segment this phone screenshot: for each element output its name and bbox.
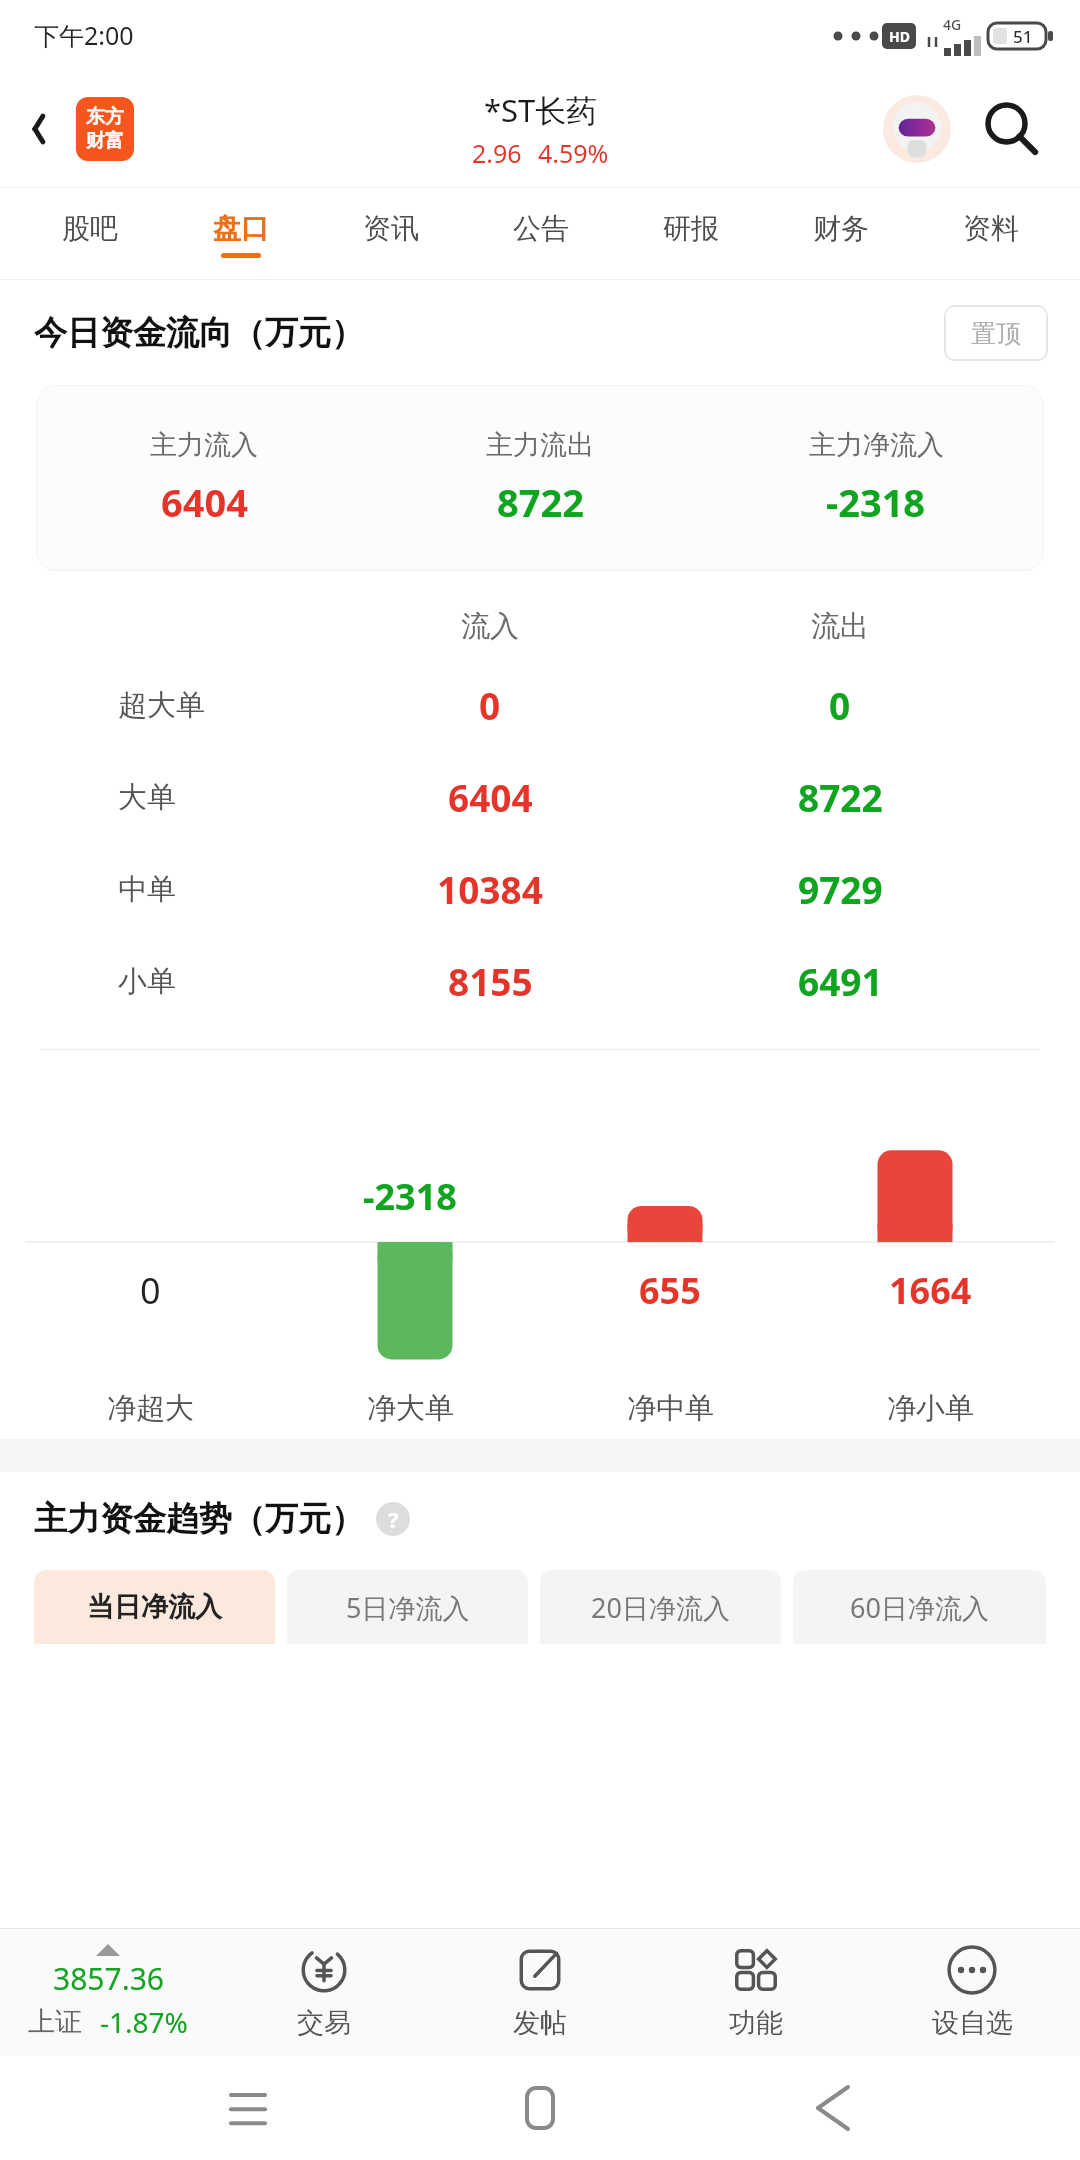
- staticText: 主力流入: [150, 428, 258, 462]
- button[interactable]: 3857.36: [0, 1928, 216, 2056]
- staticText: 净中单: [627, 1390, 714, 1427]
- staticText: ?: [388, 1504, 399, 1534]
- button[interactable]: 帮助: [376, 1502, 410, 1536]
- staticText: 研报: [663, 211, 719, 246]
- button[interactable]: 股吧: [14, 188, 165, 280]
- button[interactable]: 资料: [916, 188, 1066, 280]
- staticText: 当日净流入: [87, 1590, 222, 1624]
- staticText: 发帖: [513, 2006, 567, 2040]
- staticText: 3857.36: [53, 1958, 164, 1999]
- staticText: 主力流出: [486, 428, 594, 462]
- staticText: -2318: [826, 476, 926, 528]
- staticText: 流入: [461, 608, 519, 645]
- button[interactable]: 超大单: [0, 659, 1080, 751]
- button[interactable]: 最近任务: [203, 2063, 293, 2153]
- staticText: 公告: [513, 211, 569, 246]
- button[interactable]: 5日净流入: [287, 1570, 528, 1644]
- button[interactable]: 小单: [0, 935, 1080, 1027]
- button[interactable]: 资讯: [316, 188, 466, 280]
- staticText: 今日资金流向（万元）: [34, 312, 364, 354]
- staticText: *ST长药: [484, 89, 598, 131]
- staticText: 655: [639, 1266, 701, 1315]
- staticText: 设自选: [932, 2006, 1013, 2040]
- staticText: 下午2:00: [34, 18, 134, 52]
- button[interactable]: 财务: [766, 188, 916, 280]
- staticText: -1.87%: [100, 2003, 188, 2041]
- staticText: 8155: [448, 956, 533, 1006]
- staticText: 资讯: [363, 211, 419, 246]
- button[interactable]: 当日净流入: [34, 1570, 275, 1644]
- button[interactable]: 20日净流入: [540, 1570, 781, 1644]
- staticText: 主力净流入: [809, 428, 944, 462]
- button[interactable]: 中单: [0, 843, 1080, 935]
- staticText: 2.96: [472, 136, 522, 170]
- staticText: 上证: [28, 2005, 82, 2039]
- staticText: 净大单: [367, 1390, 454, 1427]
- button[interactable]: 0: [0, 1050, 1080, 1390]
- staticText: 10384: [437, 864, 543, 914]
- staticText: 6404: [448, 772, 533, 822]
- button[interactable]: 设自选: [864, 1928, 1080, 2056]
- staticText: 资料: [963, 211, 1019, 246]
- staticText: 置顶: [971, 318, 1021, 349]
- button[interactable]: 60日净流入: [793, 1570, 1046, 1644]
- staticText: 小单: [118, 963, 176, 1000]
- staticText: 东方: [86, 105, 124, 129]
- button[interactable]: 功能: [648, 1928, 864, 2056]
- button[interactable]: 助手: [880, 92, 954, 166]
- staticText: 0: [479, 680, 501, 730]
- staticText: 4.59%: [538, 136, 609, 170]
- button[interactable]: 公告: [466, 188, 616, 280]
- staticText: 51: [1013, 25, 1033, 48]
- button[interactable]: 返回: [788, 2063, 878, 2153]
- staticText: 中单: [118, 871, 176, 908]
- staticText: 净小单: [887, 1390, 974, 1427]
- button[interactable]: 搜索: [968, 86, 1054, 172]
- staticText: 0: [140, 1266, 161, 1315]
- staticText: 超大单: [118, 687, 205, 724]
- staticText: 交易: [297, 2006, 351, 2040]
- staticText: HD: [889, 27, 910, 46]
- staticText: 0: [829, 680, 851, 730]
- staticText: 大单: [118, 779, 176, 816]
- staticText: 1664: [889, 1266, 972, 1315]
- staticText: 财富: [86, 129, 124, 153]
- staticText: 8722: [798, 772, 883, 822]
- button[interactable]: 东方财富: [76, 97, 134, 161]
- staticText: 60日净流入: [850, 1589, 989, 1626]
- staticText: 股吧: [62, 211, 118, 246]
- staticText: 流出: [811, 608, 869, 645]
- staticText: 净超大: [107, 1390, 194, 1427]
- button[interactable]: 盘口: [165, 188, 316, 280]
- button[interactable]: 置顶: [944, 305, 1048, 361]
- staticText: 盘口: [213, 211, 269, 246]
- staticText: 功能: [729, 2006, 783, 2040]
- button[interactable]: 主力流入: [36, 385, 1044, 571]
- button[interactable]: 发帖: [432, 1928, 648, 2056]
- button[interactable]: 返回: [0, 91, 76, 167]
- staticText: 9729: [798, 864, 883, 914]
- button[interactable]: 主屏幕: [495, 2063, 585, 2153]
- staticText: 20日净流入: [591, 1589, 730, 1626]
- button[interactable]: 研报: [616, 188, 766, 280]
- staticText: 主力资金趋势（万元）: [34, 1498, 364, 1540]
- staticText: 6491: [798, 956, 883, 1006]
- staticText: -2318: [363, 1172, 457, 1221]
- button[interactable]: 大单: [0, 751, 1080, 843]
- staticText: 财务: [813, 211, 869, 246]
- button[interactable]: 交易: [216, 1928, 432, 2056]
- staticText: 4G: [943, 15, 962, 34]
- staticText: 6404: [161, 476, 248, 528]
- staticText: 5日净流入: [346, 1589, 470, 1626]
- staticText: 8722: [497, 476, 584, 528]
